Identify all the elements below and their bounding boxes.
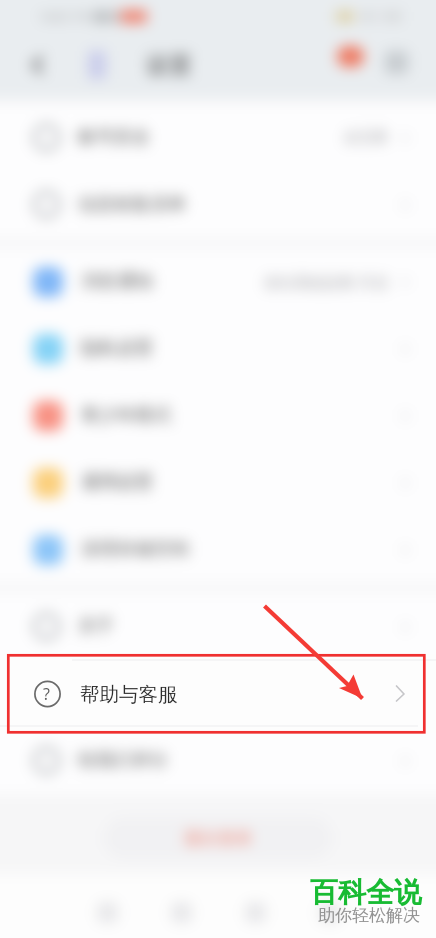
staticText: 信息收集清单 [78, 193, 186, 216]
staticText: 通用设置 [81, 471, 153, 494]
staticText: 清理存储空间 [81, 538, 189, 561]
staticText: 百科全说 [310, 875, 422, 910]
button[interactable]: Notifications [337, 46, 364, 67]
button[interactable]: 信息收集清单 [0, 171, 436, 238]
staticText: 给我们评分 [78, 749, 168, 772]
staticText: 去完善 [343, 128, 388, 147]
staticText: 帮助与客服 [80, 682, 178, 707]
staticText: 账号安全 [78, 126, 150, 149]
staticText: 助你轻松解决 [318, 905, 420, 926]
button[interactable]: 给我们评分 [0, 727, 436, 794]
staticText: ? [43, 683, 50, 705]
staticText: 青少年模式 [81, 404, 171, 427]
staticText: 隐私设置 [81, 337, 153, 360]
button[interactable]: Tab [144, 883, 218, 938]
button[interactable]: Tab [70, 883, 144, 938]
button[interactable]: 青少年模式 [0, 382, 436, 449]
button[interactable]: Tab [218, 883, 292, 938]
button[interactable]: 账号安全 [0, 104, 436, 171]
button[interactable]: 退出登录 [103, 817, 333, 859]
button[interactable]: 隐私设置 [0, 315, 436, 382]
button[interactable]: Back [26, 53, 50, 77]
staticText: 帮助与客服 [78, 682, 168, 705]
button[interactable]: 清理存储空间 [0, 516, 436, 583]
staticText: 关于 [78, 615, 114, 638]
button[interactable]: 消息通知 [0, 248, 436, 315]
button[interactable]: Tab [292, 883, 366, 938]
staticText: 消息通知 [81, 270, 153, 293]
button[interactable]: 帮助与客服 [0, 660, 436, 727]
staticText: 微信 [93, 8, 119, 24]
staticText: 退出登录 [184, 828, 252, 849]
staticText: 设置 [146, 51, 192, 80]
button[interactable]: 关于 [0, 593, 436, 660]
staticText: 前往系统设置 开启 [264, 272, 388, 292]
button[interactable]: More [385, 51, 408, 74]
button[interactable]: ? [0, 654, 436, 733]
button[interactable]: 通用设置 [0, 449, 436, 516]
